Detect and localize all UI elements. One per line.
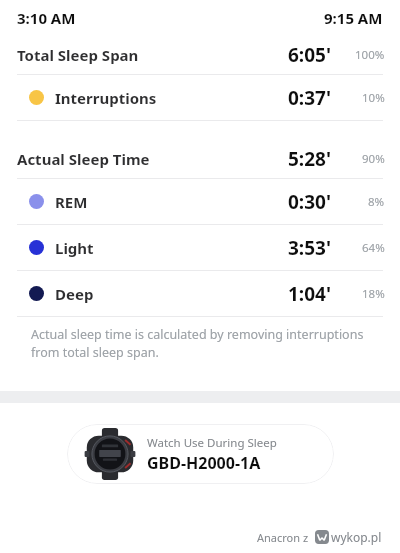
staticText: 3:53' [288,235,331,261]
button[interactable]: Actual Sleep Time [0,140,400,178]
staticText: Watch Use During Sleep [147,435,277,451]
staticText: wykop.pl [331,529,382,545]
staticText: Actual Sleep Time [17,149,150,169]
staticText: 1:04' [288,281,331,307]
staticText: 6:05' [288,42,331,68]
staticText: 3:10 AM [17,8,76,28]
button[interactable]: Total Sleep Span [0,36,400,74]
staticText: Interruptions [55,88,157,108]
staticText: GBD-H2000-1A [147,452,261,474]
other: Watch GBD-H2000-1A [83,427,137,481]
staticText: 9:15 AM [324,8,383,28]
staticText: 5:28' [288,146,331,172]
staticText: 64% [362,240,385,256]
staticText: REM [55,192,88,212]
staticText: Anacron z [257,530,309,545]
staticText: 100% [355,47,385,63]
button[interactable]: REM [0,179,400,224]
staticText: 0:30' [288,189,331,215]
button[interactable]: Watch GBD-H2000-1A [67,424,334,484]
staticText: 90% [362,151,385,167]
staticText: 18% [362,286,385,302]
button[interactable]: Deep [0,271,400,316]
staticText: 8% [368,194,385,210]
staticText: 10% [362,90,385,106]
button[interactable]: Light [0,225,400,270]
button[interactable]: Interruptions [0,75,400,120]
staticText: 0:37' [288,85,331,111]
staticText: Actual sleep time is calculated by remov… [31,326,376,361]
staticText: Light [55,238,94,258]
staticText: Total Sleep Span [17,45,139,65]
staticText: Deep [55,284,94,304]
